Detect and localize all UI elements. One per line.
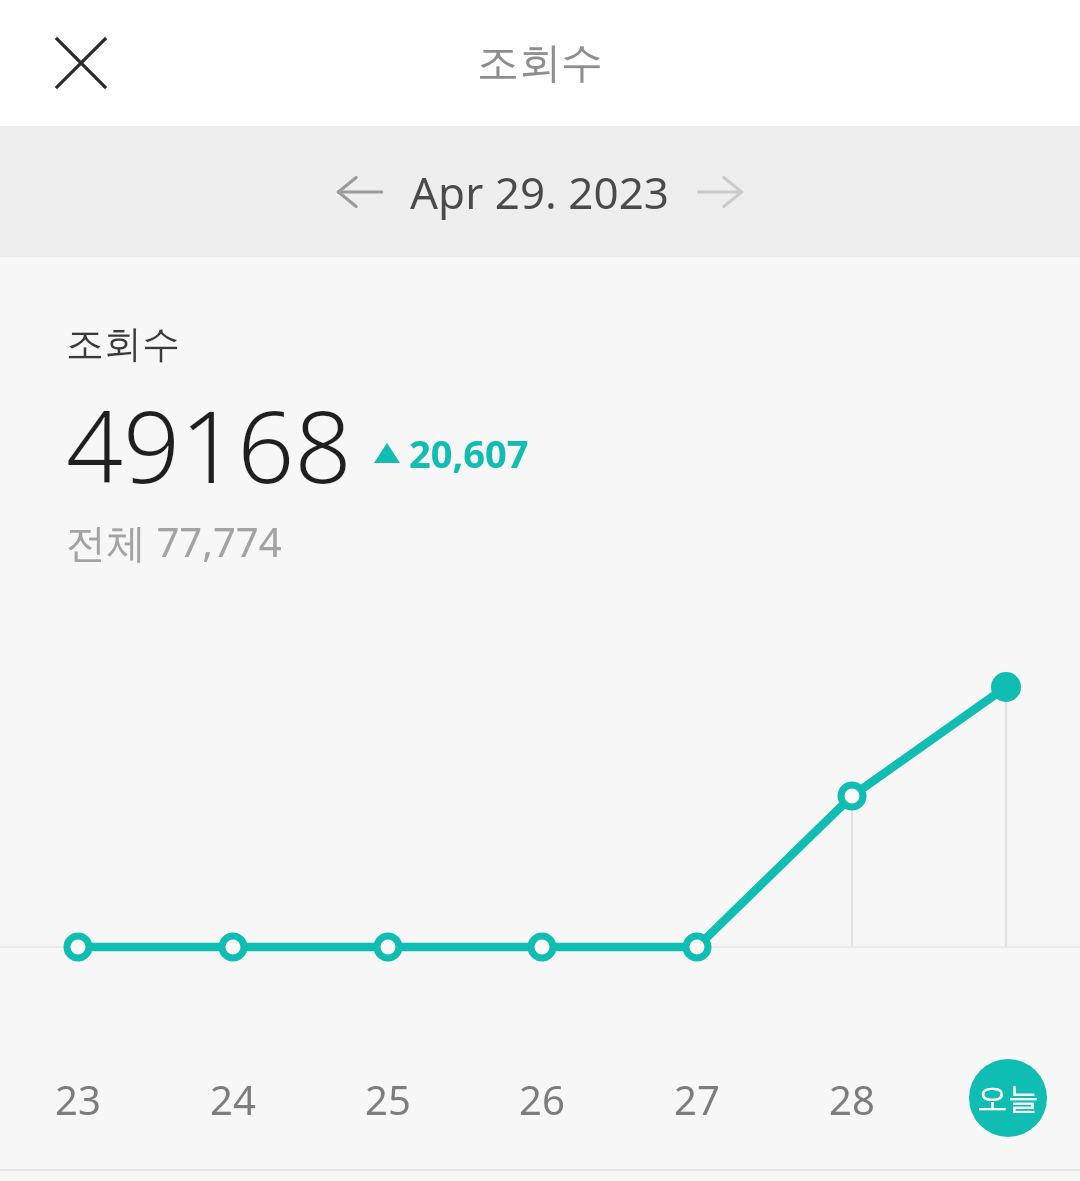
- staticText: 전체 77,774: [66, 514, 282, 569]
- button[interactable]: 오늘: [969, 1059, 1047, 1137]
- button[interactable]: Next day: [680, 152, 760, 232]
- button[interactable]: Apr 29. 2023: [410, 162, 670, 222]
- staticText: 26: [519, 1072, 565, 1126]
- staticText: 23: [55, 1072, 101, 1126]
- staticText: 28: [829, 1072, 875, 1126]
- button[interactable]: 27: [657, 1069, 737, 1129]
- staticText: 오늘: [977, 1079, 1039, 1118]
- staticText: 27: [674, 1072, 720, 1126]
- staticText: 49168: [66, 376, 352, 512]
- button[interactable]: 23: [38, 1069, 118, 1129]
- button[interactable]: 26: [502, 1069, 582, 1129]
- staticText: 조회수: [477, 37, 603, 90]
- button[interactable]: 28: [812, 1069, 892, 1129]
- staticText: 24: [210, 1072, 256, 1126]
- button[interactable]: 조회수: [66, 320, 180, 368]
- button[interactable]: 24: [193, 1069, 273, 1129]
- button[interactable]: 25: [348, 1069, 428, 1129]
- staticText: 25: [365, 1072, 411, 1126]
- button[interactable]: Close: [33, 15, 129, 111]
- staticText: 20,607: [409, 427, 529, 479]
- button[interactable]: Previous day: [320, 152, 400, 232]
